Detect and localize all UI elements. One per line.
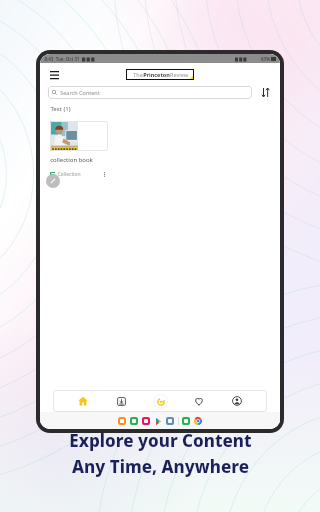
button[interactable]: Browser <box>166 417 174 425</box>
staticText: Any Time, Anywhere <box>72 455 249 478</box>
button[interactable]: Play Store <box>154 417 162 425</box>
staticText: 8:43 Tue, Oct 31 <box>44 56 80 62</box>
staticText: Search Content <box>60 89 100 96</box>
button[interactable]: Chrome <box>194 417 202 425</box>
button[interactable]: Search Content <box>48 86 252 99</box>
staticText: collection book <box>50 156 93 164</box>
button[interactable]: Files <box>118 417 126 425</box>
button[interactable] <box>50 121 108 151</box>
button[interactable]: Camera <box>142 417 150 425</box>
staticText: Explore your Content <box>69 429 252 452</box>
button[interactable]: Profile <box>222 390 252 412</box>
button[interactable]: The Princeton Review <box>126 69 194 80</box>
staticText: The <box>133 71 143 78</box>
staticText: 63% <box>261 56 270 62</box>
button[interactable]: Downloads <box>106 390 136 412</box>
button[interactable]: Home <box>68 390 98 412</box>
staticText: Text (1) <box>50 105 71 113</box>
button[interactable]: Messages <box>130 417 138 425</box>
staticText: Review <box>170 71 188 78</box>
button[interactable]: App <box>182 417 190 425</box>
staticText: Princeton <box>143 71 170 78</box>
button[interactable]: Sort <box>258 85 272 99</box>
button[interactable]: Edit <box>46 174 60 188</box>
staticText: Collection <box>57 171 81 178</box>
button[interactable]: Favorites <box>184 390 214 412</box>
button[interactable]: More options <box>100 170 108 178</box>
button[interactable]: Explore <box>145 390 175 412</box>
button[interactable]: Menu <box>46 66 62 82</box>
